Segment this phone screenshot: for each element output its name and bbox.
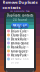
button[interactable]: Frank Ruiz <box>6 49 34 53</box>
staticText: 24 found <box>13 18 27 22</box>
button[interactable]: Henry Park <box>6 57 34 61</box>
button[interactable]: Emma Stone <box>6 45 34 49</box>
staticText: +1 202 555 0194 <box>11 49 29 56</box>
staticText: +1 202 555 0148 <box>11 29 29 36</box>
staticText: Derek Hale <box>11 38 27 41</box>
staticText: Gina Lopez <box>11 50 27 53</box>
staticText: Clara Diaz <box>11 34 26 37</box>
staticText: Anna Smith <box>11 26 28 29</box>
staticText: +1 202 555 0165 <box>11 53 29 60</box>
staticText: Frank Ruiz <box>11 46 25 49</box>
staticText: +1 202 555 0108 <box>11 57 29 64</box>
button[interactable]: Brian Cole <box>6 33 34 37</box>
staticText: Remove Duplicate contacts <box>2 0 37 10</box>
button[interactable]: Derek Hale <box>6 41 34 45</box>
staticText: in a single tap <box>10 10 30 13</box>
staticText: +1 202 555 0110 <box>11 37 29 44</box>
button[interactable]: Clara Diaz <box>6 37 34 41</box>
button[interactable]: Gina Lopez <box>6 53 34 57</box>
staticText: Henry Park <box>11 54 26 57</box>
staticText: Duplicate contacts <box>7 14 33 17</box>
staticText: +1 202 555 0121 <box>11 33 29 40</box>
staticText: +1 202 555 0132 <box>11 45 29 52</box>
button[interactable]: Merge all <box>11 23 29 28</box>
staticText: +1 202 555 0177 <box>11 41 29 48</box>
button[interactable]: Anna Smith <box>6 29 34 33</box>
staticText: Brian Cole <box>11 30 27 33</box>
staticText: Emma Stone <box>11 42 29 45</box>
staticText: Merge all <box>13 24 27 27</box>
